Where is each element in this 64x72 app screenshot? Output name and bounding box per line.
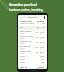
staticText: $268.48 xyxy=(38,66,45,68)
staticText: $248.60 xyxy=(40,56,45,58)
staticText: Sourdough loaves xyxy=(20,41,32,43)
staticText: 12 trays xyxy=(34,47,39,49)
button[interactable]: Back xyxy=(19,16,22,19)
button[interactable]: Order details xyxy=(23,16,42,18)
staticText: $51.00 xyxy=(40,52,45,54)
staticText: Parmesan wheel xyxy=(20,51,31,53)
button[interactable]: Organic tomatoes xyxy=(18,30,47,35)
staticText: $54.00 xyxy=(40,37,45,39)
staticText: SKU 4471 xyxy=(20,38,25,39)
staticText: $0.00 xyxy=(41,59,45,61)
staticText: AMT xyxy=(42,27,45,29)
staticText: INVOICE #20451 xyxy=(20,20,32,22)
staticText: 2 pc xyxy=(36,52,39,54)
staticText: 24 kg xyxy=(35,32,39,34)
staticText: $38.00 xyxy=(40,47,45,49)
button[interactable]: Olive oil, extra virgin xyxy=(18,35,47,40)
staticText: $43.20 xyxy=(40,42,45,44)
staticText: SKU 4471 xyxy=(20,48,25,49)
staticText: Paid xyxy=(42,23,45,25)
staticText: business orders, invoicing xyxy=(9,8,43,12)
staticText: Delivery xyxy=(20,59,41,61)
staticText: Tax (8%) xyxy=(20,62,41,64)
staticText: 6 btl xyxy=(36,37,39,39)
staticText: $248.60 xyxy=(37,20,45,23)
staticText: 12 Mar 2024 · Delivered xyxy=(20,23,35,25)
staticText: QTY xyxy=(37,27,40,29)
button[interactable]: Parmesan wheel xyxy=(18,50,47,55)
staticText: TOTAL DUE xyxy=(20,66,38,68)
staticText: Organic tomatoes xyxy=(20,31,32,33)
staticText: SKU 4471 xyxy=(20,43,25,44)
staticText: SKU 4471 xyxy=(20,53,25,54)
button[interactable]: Sourdough loaves xyxy=(18,40,47,45)
staticText: Subtotal xyxy=(20,56,40,58)
staticText: $62.40 xyxy=(40,32,45,34)
staticText: SKU 4471 xyxy=(20,33,25,34)
button[interactable]: More options xyxy=(43,16,46,19)
staticText: Order details xyxy=(28,16,38,18)
staticText: ITEM xyxy=(20,27,37,29)
staticText: Streamline your food xyxy=(9,3,37,7)
staticText: Free-range eggs xyxy=(20,46,31,48)
button[interactable]: Free-range eggs xyxy=(18,45,47,50)
staticText: $19.88 xyxy=(41,62,45,64)
staticText: Olive oil, extra virgin xyxy=(20,36,34,38)
staticText: 18 pc xyxy=(35,42,39,44)
